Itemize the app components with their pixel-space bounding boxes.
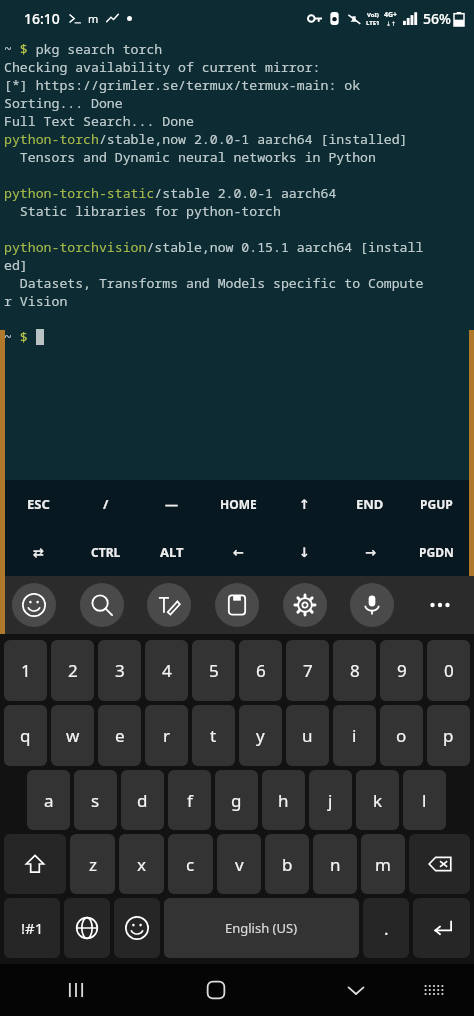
button[interactable]: z xyxy=(70,834,115,894)
staticText: q xyxy=(20,724,31,747)
button[interactable]: Settings xyxy=(283,583,327,627)
button[interactable]: More options xyxy=(418,583,462,627)
button[interactable]: 1 xyxy=(4,640,47,701)
button[interactable]: Emoji xyxy=(114,898,160,958)
staticText: p xyxy=(443,724,454,747)
button[interactable]: PGDN xyxy=(403,528,469,576)
staticText: LTE1 xyxy=(366,19,380,27)
button[interactable]: 8 xyxy=(333,640,376,701)
button[interactable]: END xyxy=(337,480,403,528)
button[interactable]: Recent apps xyxy=(52,966,100,1014)
button[interactable]: d xyxy=(121,770,164,830)
button[interactable]: 3 xyxy=(98,640,141,701)
staticText: 7 xyxy=(303,659,313,682)
staticText: 2 xyxy=(68,659,78,682)
staticText: 0 xyxy=(444,659,454,682)
button[interactable]: HOME xyxy=(205,480,271,528)
button[interactable]: . xyxy=(363,898,409,958)
staticText: 9 xyxy=(397,659,407,682)
button[interactable]: a xyxy=(27,770,70,830)
button[interactable]: PGUP xyxy=(403,480,469,528)
staticText: d xyxy=(137,789,148,812)
button[interactable]: / xyxy=(72,480,139,528)
button[interactable]: — xyxy=(139,480,205,528)
button[interactable]: r xyxy=(145,705,188,766)
staticText: Datasets, Transforms and Models specific… xyxy=(4,274,424,292)
button[interactable]: Switch keyboard xyxy=(412,968,456,1012)
button[interactable]: Enter xyxy=(413,898,470,958)
button[interactable]: p xyxy=(427,705,470,766)
button[interactable]: Handwriting xyxy=(147,583,191,627)
button[interactable]: m xyxy=(361,834,405,894)
button[interactable]: q xyxy=(4,705,47,766)
button[interactable]: ALT xyxy=(139,528,205,576)
button[interactable]: 0 xyxy=(427,640,470,701)
staticText: → xyxy=(365,545,376,560)
staticText: c xyxy=(186,853,195,876)
button[interactable]: Shift xyxy=(4,834,66,894)
button[interactable]: 4 xyxy=(145,640,188,701)
button[interactable]: l xyxy=(403,770,446,830)
button[interactable]: ↓ xyxy=(271,528,337,576)
button[interactable]: s xyxy=(74,770,117,830)
button[interactable]: 5 xyxy=(192,640,235,701)
button[interactable]: Backspace xyxy=(409,834,470,894)
staticText: h xyxy=(278,789,289,812)
button[interactable]: 2 xyxy=(51,640,94,701)
staticText: e xyxy=(115,724,125,747)
staticText: ~ $ pkg search torch xyxy=(4,40,163,58)
button[interactable]: b xyxy=(265,834,309,894)
button[interactable]: ↑ xyxy=(271,480,337,528)
button[interactable]: ⇄ xyxy=(5,528,72,576)
button[interactable]: Hide keyboard xyxy=(332,966,380,1014)
button[interactable]: 9 xyxy=(380,640,423,701)
button[interactable]: g xyxy=(215,770,258,830)
staticText: m xyxy=(88,11,99,26)
button[interactable]: k xyxy=(356,770,399,830)
button[interactable]: English (US) xyxy=(164,898,359,958)
staticText: x xyxy=(137,853,146,876)
staticText: ← xyxy=(233,545,244,560)
staticText: python-torch/stable,now 2.0.0-1 aarch64 … xyxy=(4,130,408,148)
button[interactable]: n xyxy=(313,834,357,894)
button[interactable]: x xyxy=(119,834,164,894)
button[interactable]: e xyxy=(98,705,141,766)
button[interactable]: y xyxy=(239,705,282,766)
button[interactable]: t xyxy=(192,705,235,766)
staticText: 1 xyxy=(21,659,31,682)
staticText: g xyxy=(231,789,242,812)
staticText: Tensors and Dynamic neural networks in P… xyxy=(4,148,376,166)
staticText: t xyxy=(210,724,217,747)
button[interactable]: Voice input xyxy=(350,583,394,627)
button[interactable]: c xyxy=(168,834,213,894)
button[interactable]: 6 xyxy=(239,640,282,701)
button[interactable]: CTRL xyxy=(72,528,139,576)
button[interactable]: Emoji xyxy=(12,583,56,627)
button[interactable]: h xyxy=(262,770,305,830)
button[interactable]: Change language xyxy=(64,898,110,958)
button[interactable]: 7 xyxy=(286,640,329,701)
staticText: ~ $ xyxy=(4,328,36,346)
button[interactable]: u xyxy=(286,705,329,766)
staticText: w xyxy=(66,724,80,747)
staticText: ↑ xyxy=(299,497,310,512)
staticText: [*] https://grimler.se/termux/termux-mai… xyxy=(4,76,361,94)
button[interactable]: !#1 xyxy=(4,898,60,958)
button[interactable]: → xyxy=(337,528,403,576)
button[interactable]: o xyxy=(380,705,423,766)
button[interactable]: w xyxy=(51,705,94,766)
button[interactable]: v xyxy=(217,834,261,894)
button[interactable]: Clipboard xyxy=(215,583,259,627)
button[interactable]: i xyxy=(333,705,376,766)
button[interactable]: ESC xyxy=(5,480,72,528)
staticText: ALT xyxy=(160,543,184,561)
staticText: END xyxy=(356,495,384,513)
button[interactable]: j xyxy=(309,770,352,830)
staticText: n xyxy=(330,853,341,876)
button[interactable]: Search xyxy=(80,583,124,627)
staticText: z xyxy=(89,853,97,876)
button[interactable]: Home xyxy=(192,966,240,1014)
button[interactable]: f xyxy=(168,770,211,830)
button[interactable]: ← xyxy=(205,528,271,576)
staticText: ↓ xyxy=(299,545,310,560)
